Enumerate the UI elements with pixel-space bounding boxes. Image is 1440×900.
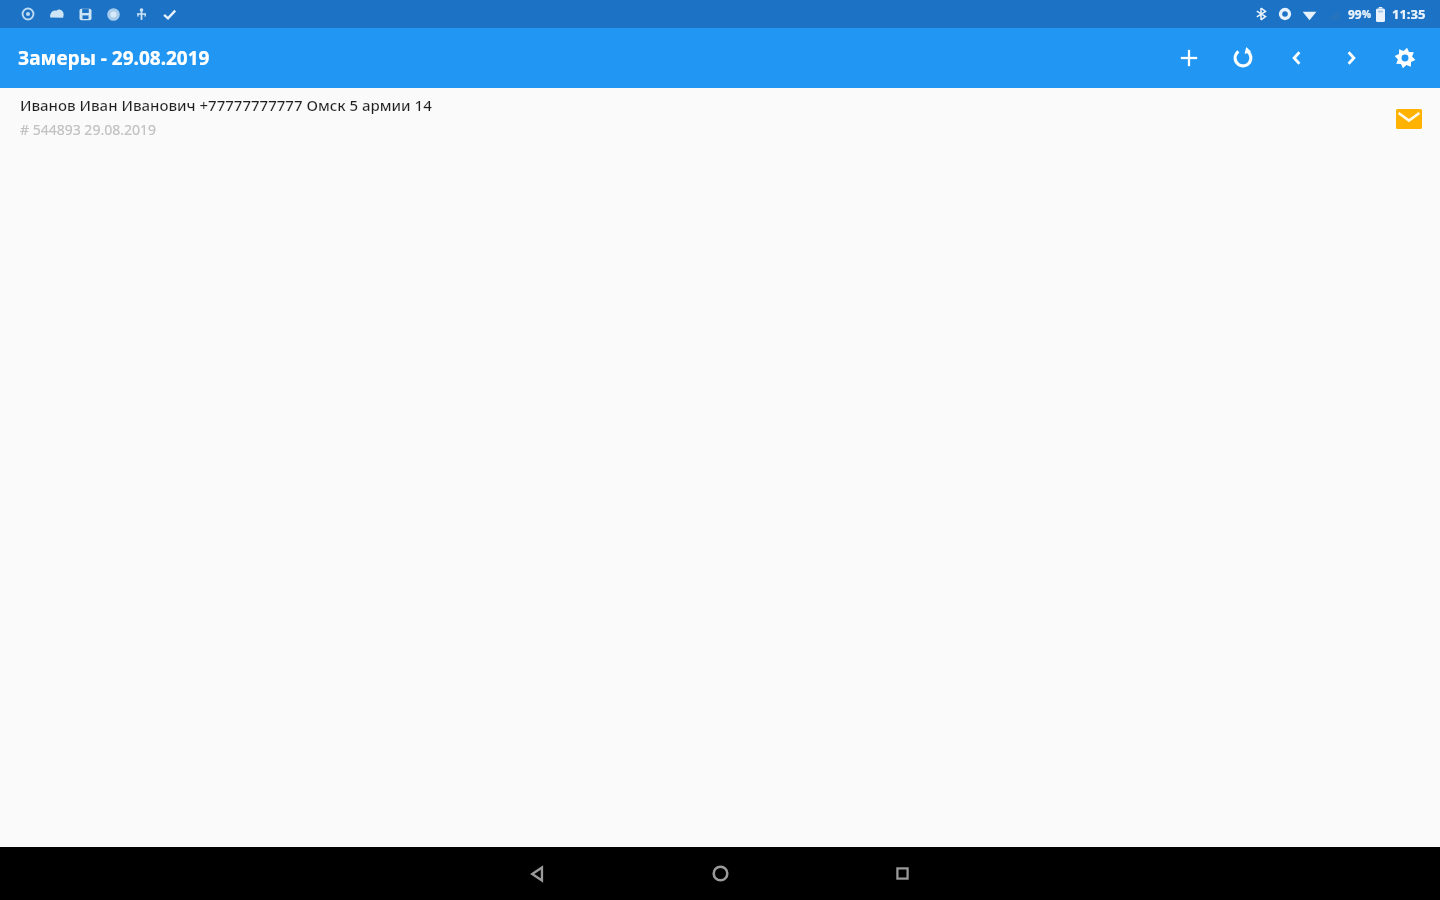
button[interactable]: Refresh xyxy=(1216,31,1270,85)
button[interactable]: Add xyxy=(1162,31,1216,85)
button[interactable]: Recent apps xyxy=(872,847,932,900)
staticText: 99 xyxy=(1348,6,1362,22)
button[interactable]: Next xyxy=(1324,31,1378,85)
staticText: # 544893 29.08.2019 xyxy=(20,120,156,139)
staticText: % xyxy=(1362,7,1372,21)
staticText: Иванов Иван Иванович +77777777777 Омск 5… xyxy=(20,95,432,115)
button[interactable]: Иванов Иван Иванович +77777777777 Омск 5… xyxy=(0,88,1440,150)
button[interactable]: Settings xyxy=(1378,31,1432,85)
button[interactable]: Home xyxy=(690,847,750,900)
button[interactable]: Previous xyxy=(1270,31,1324,85)
staticText: 11:35 xyxy=(1392,5,1426,23)
staticText: Замеры - 29.08.2019 xyxy=(18,45,210,71)
button[interactable]: Back xyxy=(508,847,568,900)
button[interactable]: Mail xyxy=(1382,96,1436,142)
